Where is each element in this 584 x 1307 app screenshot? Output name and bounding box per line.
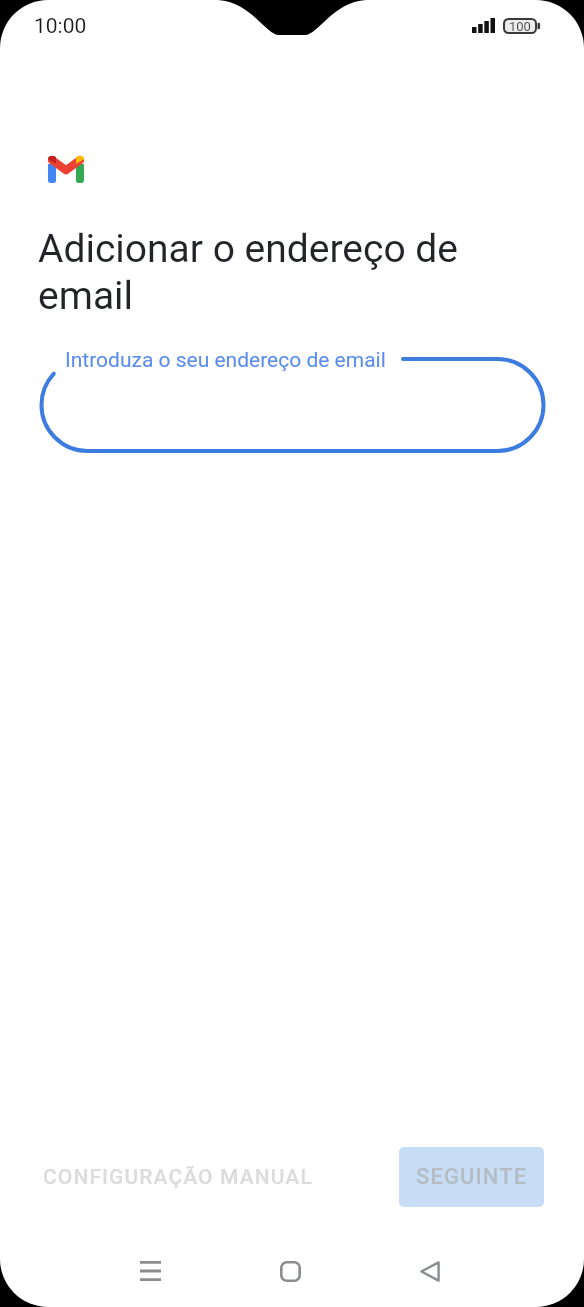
button[interactable]: CONFIGURAÇÃO MANUAL bbox=[27, 1147, 329, 1207]
staticText: CONFIGURAÇÃO MANUAL bbox=[43, 1165, 313, 1190]
button[interactable]: Back bbox=[386, 1242, 474, 1300]
staticText: Introduza o seu endereço de email bbox=[65, 348, 386, 373]
button[interactable]: Home bbox=[246, 1242, 334, 1300]
staticText: 10:00 bbox=[34, 14, 87, 39]
staticText: 100 bbox=[509, 19, 531, 34]
staticText: SEGUINTE bbox=[416, 1164, 528, 1190]
button[interactable]: Recent apps bbox=[106, 1242, 194, 1300]
staticText: Adicionar o endereço de email bbox=[38, 226, 474, 319]
button[interactable]: SEGUINTE bbox=[399, 1147, 544, 1207]
